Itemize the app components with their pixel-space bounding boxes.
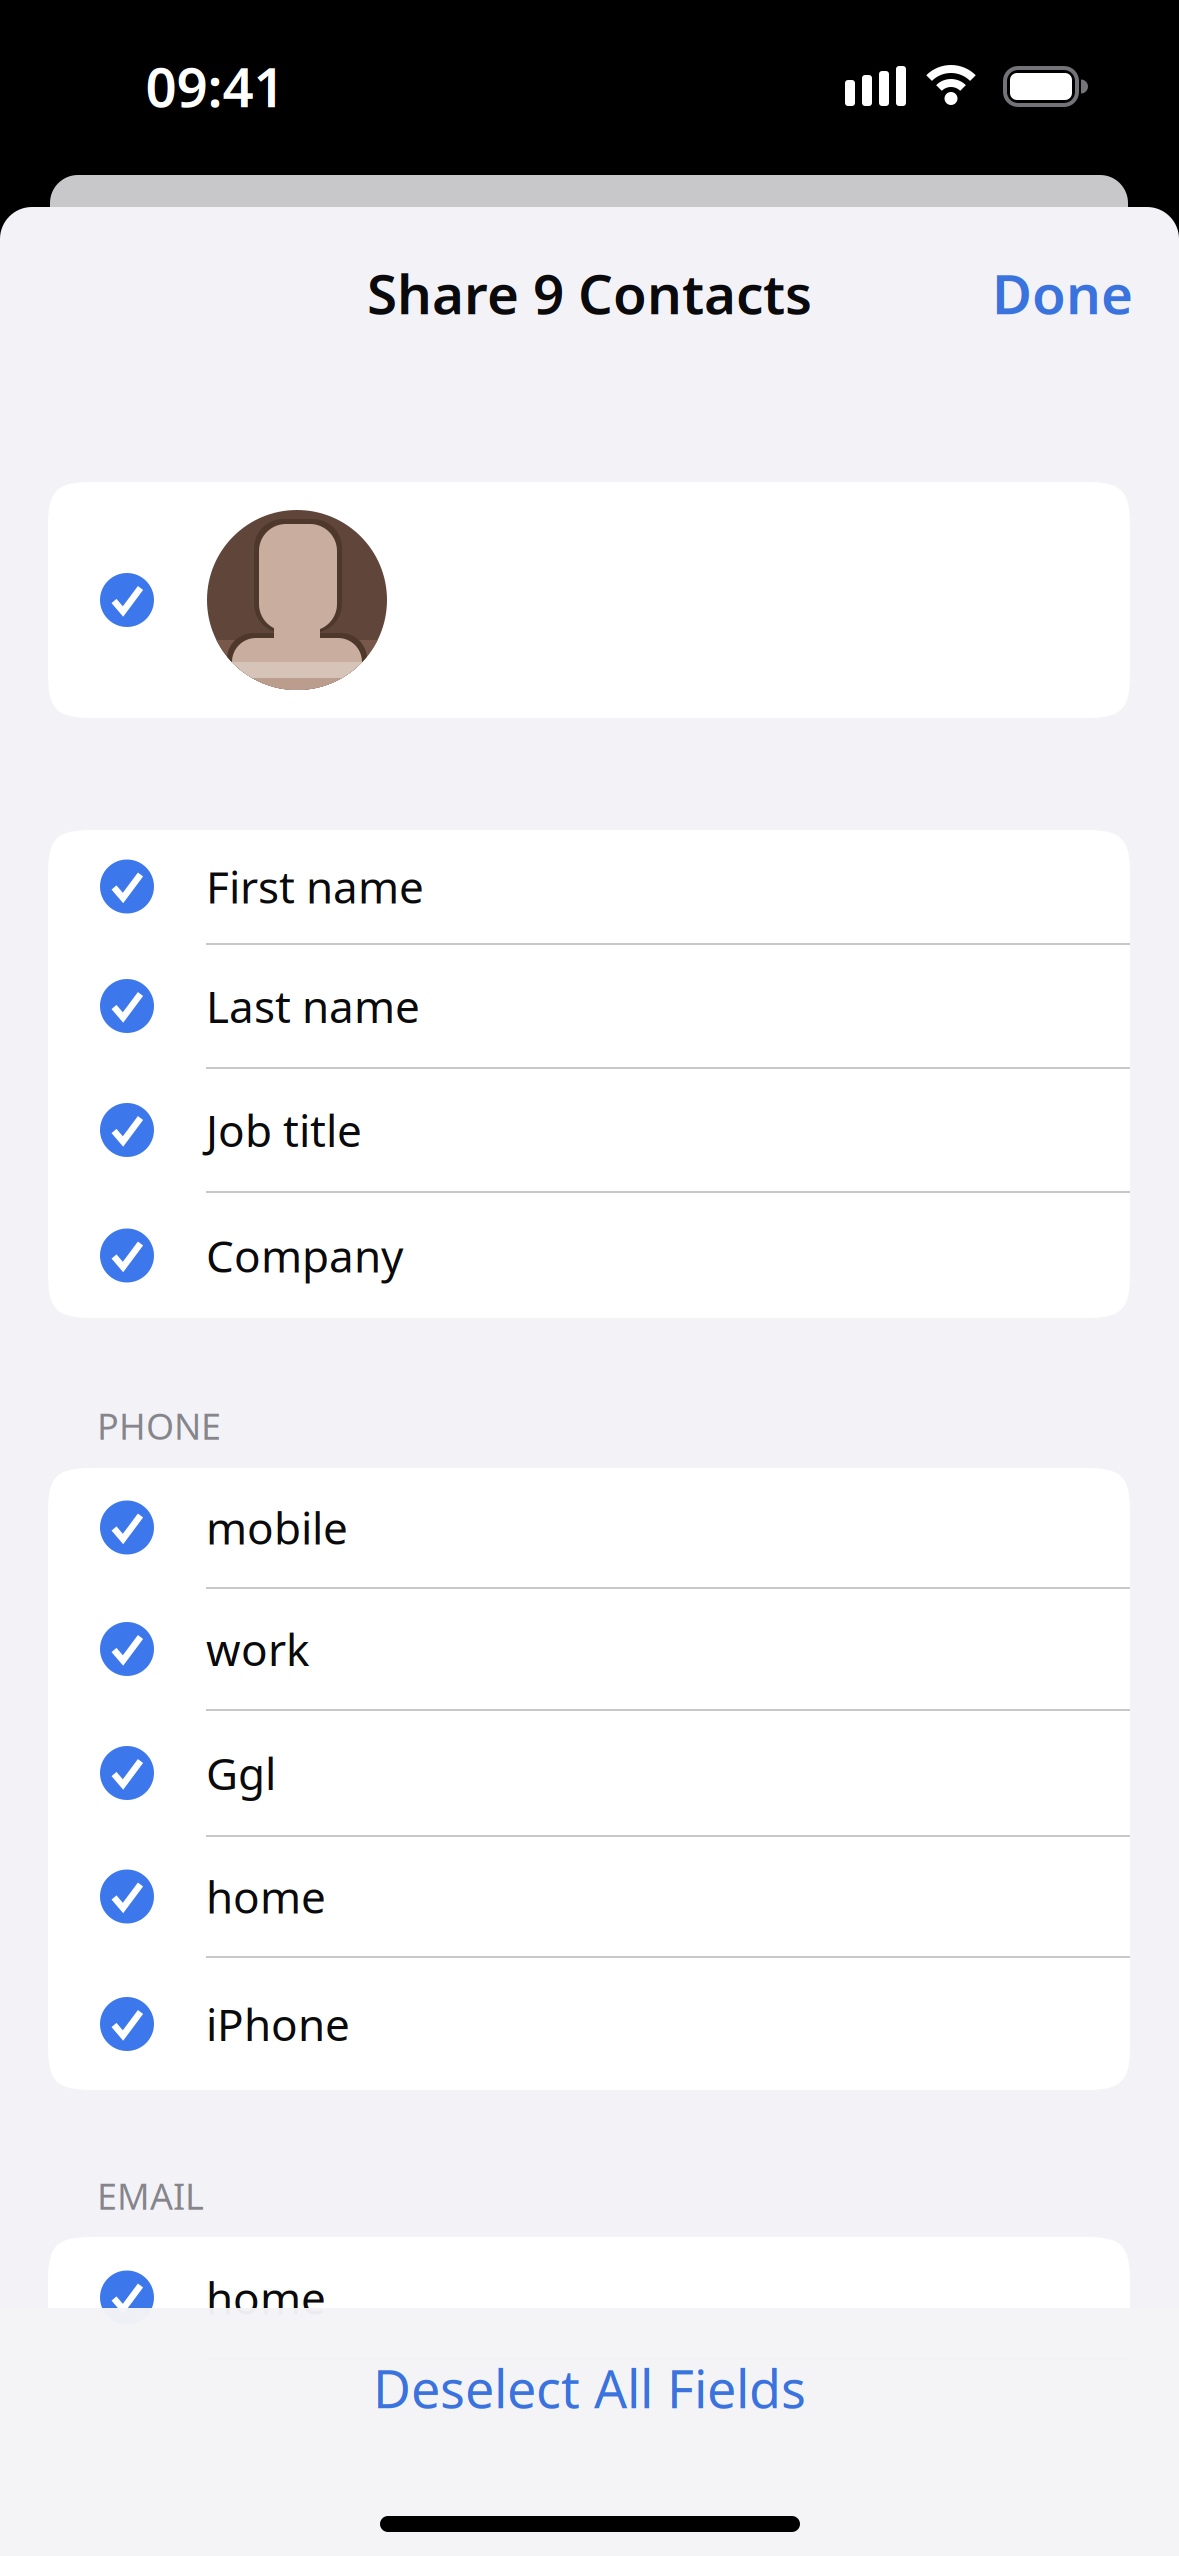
- staticText: First name: [206, 857, 424, 916]
- button[interactable]: work: [48, 1589, 1130, 1709]
- staticText: work: [206, 1620, 309, 1678]
- staticText: Deselect All Fields: [373, 2353, 806, 2423]
- staticText: Ggl: [206, 1744, 276, 1802]
- staticText: EMAIL: [97, 2172, 204, 2220]
- staticText: Share 9 Contacts: [367, 257, 812, 329]
- button[interactable]: Ggl: [48, 1711, 1130, 1835]
- staticText: home: [206, 2268, 326, 2327]
- staticText: Job title: [206, 1101, 362, 1159]
- staticText: iPhone: [206, 1995, 350, 2053]
- button[interactable]: Company: [48, 1193, 1130, 1318]
- button[interactable]: mobile: [48, 1468, 1130, 1587]
- button[interactable]: [48, 482, 1130, 718]
- button[interactable]: home: [48, 1837, 1130, 1956]
- staticText: Done: [992, 257, 1133, 329]
- button[interactable]: iPhone: [48, 1958, 1130, 2090]
- staticText: Last name: [206, 977, 420, 1035]
- staticText: mobile: [206, 1498, 348, 1557]
- staticText: 09:41: [145, 50, 284, 122]
- staticText: Company: [206, 1226, 403, 1285]
- button[interactable]: First name: [48, 830, 1130, 943]
- button[interactable]: Last name: [48, 945, 1130, 1067]
- button[interactable]: Job title: [48, 1069, 1130, 1191]
- staticText: home: [206, 1867, 326, 1926]
- button[interactable]: Deselect All Fields: [373, 2353, 806, 2423]
- button[interactable]: Done: [992, 257, 1133, 329]
- staticText: PHONE: [97, 1402, 221, 1450]
- button[interactable]: home: [48, 2237, 1130, 2358]
